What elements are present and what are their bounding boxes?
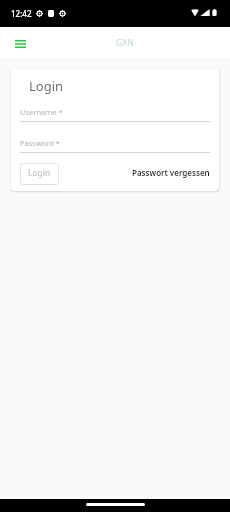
staticText: Password * bbox=[20, 138, 61, 148]
staticText: Login bbox=[29, 77, 64, 95]
staticText: Login bbox=[28, 167, 51, 179]
button[interactable]: Login bbox=[20, 163, 59, 185]
staticText: 12:42 bbox=[11, 8, 32, 19]
button[interactable]: Username * bbox=[20, 107, 210, 122]
button[interactable]: Open navigation menu bbox=[9, 32, 31, 54]
staticText: Username * bbox=[20, 107, 63, 117]
button[interactable]: Passwort vergessen bbox=[132, 164, 210, 181]
button[interactable]: Password * bbox=[20, 138, 210, 153]
staticText: Passwort vergessen bbox=[132, 167, 210, 178]
staticText: GXN bbox=[116, 37, 134, 49]
